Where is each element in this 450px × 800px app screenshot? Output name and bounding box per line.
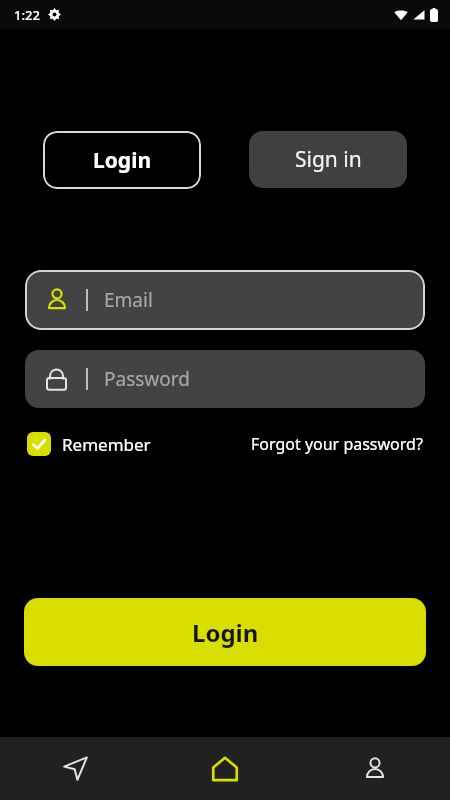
staticText: Forgot your password? <box>251 433 423 455</box>
staticText: Email <box>104 287 153 313</box>
staticText: Login <box>93 146 152 175</box>
staticText: Login <box>192 616 259 649</box>
button[interactable]: Explore <box>0 737 150 800</box>
staticText: Sign in <box>295 145 362 174</box>
button[interactable]: Forgot your password? <box>251 433 423 455</box>
staticText: Password <box>104 366 190 392</box>
button[interactable]: Home <box>150 737 300 800</box>
button[interactable]: Password <box>25 350 425 408</box>
staticText: Remember <box>62 433 151 456</box>
button[interactable]: Profile <box>300 737 450 800</box>
button[interactable]: Remember <box>27 432 151 456</box>
button[interactable]: Email <box>25 270 425 330</box>
button[interactable]: Login <box>24 598 426 666</box>
button[interactable]: Sign in <box>249 131 407 188</box>
button[interactable]: Login <box>43 131 201 189</box>
staticText: 1:22 <box>14 6 40 24</box>
